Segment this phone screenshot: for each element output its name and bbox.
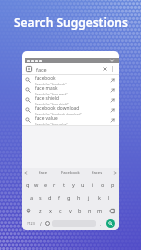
staticText: u — [81, 181, 85, 188]
staticText: Search for "face value" — [35, 123, 68, 125]
staticText: f — [58, 194, 60, 201]
button[interactable]: More — [111, 168, 119, 178]
staticText: Search for "face shield" — [35, 103, 69, 105]
button[interactable]: v — [65, 204, 75, 217]
button[interactable]: Shift — [22, 204, 35, 217]
staticText: w — [34, 181, 39, 188]
button[interactable]: b — [75, 204, 85, 217]
button[interactable]: Emoji — [44, 217, 51, 230]
staticText: ?123 — [27, 221, 35, 226]
staticText: Facebook — [61, 170, 80, 176]
button[interactable]: / — [38, 217, 44, 230]
staticText: y — [72, 181, 75, 188]
button[interactable]: Backspace — [105, 204, 119, 217]
button[interactable]: r — [50, 178, 59, 191]
button[interactable]: face value — [22, 115, 119, 125]
button[interactable]: y — [68, 178, 78, 191]
button[interactable]: Facebook — [57, 168, 84, 178]
button[interactable]: Clear — [102, 66, 108, 72]
button[interactable]: l — [104, 191, 114, 204]
button[interactable]: . — [97, 217, 104, 230]
staticText: j — [88, 194, 90, 201]
staticText: facebook — [35, 75, 56, 82]
button[interactable]: facebook download — [22, 105, 119, 115]
staticText: / — [40, 221, 42, 227]
staticText: h — [77, 194, 81, 201]
staticText: face value — [35, 115, 58, 122]
button[interactable]: face shield — [22, 95, 119, 105]
button[interactable]: face mask — [22, 85, 119, 95]
button[interactable]: w — [32, 178, 41, 191]
button[interactable]: c — [55, 204, 65, 217]
staticText: n — [88, 207, 92, 214]
button[interactable]: f — [54, 191, 64, 204]
button[interactable]: g — [64, 191, 74, 204]
staticText: Search for "facebook" — [35, 83, 67, 85]
button[interactable]: Previous — [22, 168, 30, 178]
staticText: Search for "facebook download" — [35, 113, 82, 115]
button[interactable]: Search — [104, 217, 117, 230]
staticText: z — [39, 207, 42, 214]
button[interactable]: e — [41, 178, 50, 191]
staticText: v — [69, 207, 72, 214]
button[interactable]: i — [88, 178, 98, 191]
staticText: face — [39, 170, 48, 176]
staticText: Search Suggestions — [14, 14, 128, 30]
staticText: e — [44, 181, 48, 188]
button[interactable]: n — [85, 204, 95, 217]
button[interactable]: m — [95, 204, 105, 217]
button[interactable]: k — [94, 191, 104, 204]
button[interactable]: h — [74, 191, 84, 204]
button[interactable]: facebook — [22, 75, 119, 85]
button[interactable]: ?123 — [24, 217, 38, 230]
staticText: faces — [92, 170, 103, 176]
staticText: . — [100, 221, 102, 227]
staticText: face — [36, 66, 47, 73]
staticText: x — [49, 207, 52, 214]
button[interactable]: o — [98, 178, 108, 191]
staticText: p — [111, 181, 115, 188]
staticText: c — [59, 207, 62, 214]
button[interactable]: q — [23, 178, 32, 191]
button[interactable]: faces — [84, 168, 111, 178]
staticText: face shield — [35, 95, 59, 102]
button[interactable]: u — [78, 178, 88, 191]
staticText: t — [63, 181, 65, 188]
button[interactable]: a — [27, 191, 36, 204]
button[interactable]: x — [45, 204, 55, 217]
button[interactable]: d — [45, 191, 54, 204]
staticText: i — [92, 181, 94, 188]
button[interactable]: p — [108, 178, 118, 191]
staticText: a — [30, 194, 34, 201]
button[interactable]: z — [35, 204, 45, 217]
staticText: q — [26, 181, 30, 188]
staticText: k — [98, 194, 101, 201]
staticText: g — [67, 194, 71, 201]
button[interactable]: face — [30, 168, 57, 178]
staticText: facebook download — [35, 105, 80, 112]
staticText: face mask — [35, 85, 58, 92]
button[interactable]: s — [36, 191, 45, 204]
staticText: m — [97, 207, 103, 214]
button[interactable]: j — [84, 191, 94, 204]
staticText: s — [39, 194, 42, 201]
staticText: d — [48, 194, 52, 201]
staticText: b — [78, 207, 82, 214]
button[interactable]: t — [59, 178, 68, 191]
staticText: Search for "face mask" — [35, 93, 68, 95]
staticText: l — [108, 194, 110, 201]
staticText: o — [101, 181, 105, 188]
staticText: r — [53, 181, 56, 188]
